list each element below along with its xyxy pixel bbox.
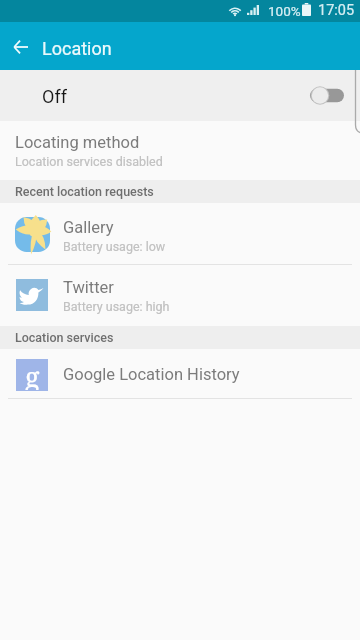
staticText: Twitter (63, 278, 114, 297)
button[interactable]: Off (0, 70, 360, 121)
staticText: Location services (15, 330, 114, 345)
button[interactable]: Navigate up (5, 30, 37, 62)
button[interactable]: Location on/off (301, 84, 345, 107)
staticText: Battery usage: high (63, 299, 170, 314)
staticText: Battery usage: low (63, 239, 166, 254)
staticText: Recent location requests (15, 184, 154, 199)
staticText: Location (42, 38, 112, 59)
button[interactable]: g (0, 349, 360, 398)
staticText: g (25, 358, 40, 390)
button[interactable]: Gallery (0, 203, 360, 264)
staticText: Off (42, 86, 67, 107)
staticText: Location services disabled (15, 154, 163, 169)
button[interactable]: Locating method (0, 121, 360, 180)
staticText: Google Location History (63, 365, 240, 384)
button[interactable]: Twitter (0, 264, 360, 326)
staticText: 100% (268, 3, 301, 19)
staticText: Gallery (63, 218, 114, 237)
staticText: Locating method (15, 133, 140, 152)
staticText: 17:05 (318, 2, 355, 19)
